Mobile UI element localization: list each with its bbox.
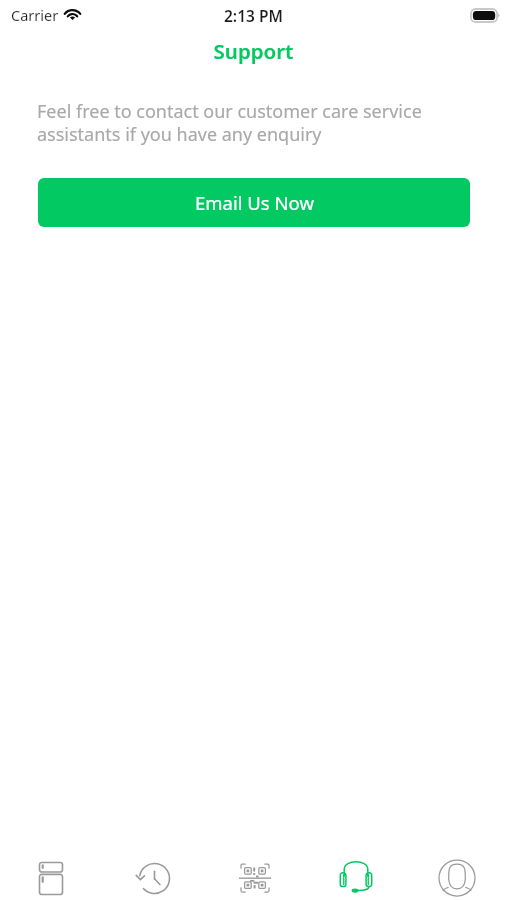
button[interactable]: Support: [305, 855, 406, 900]
button[interactable]: History: [102, 855, 204, 900]
staticText: Feel free to contact our customer care s…: [37, 99, 447, 147]
button[interactable]: Profile: [406, 855, 507, 900]
staticText: Support: [0, 37, 507, 65]
button[interactable]: Fridge: [0, 855, 102, 900]
button[interactable]: Email Us Now: [38, 178, 470, 227]
staticText: Email Us Now: [195, 190, 314, 215]
staticText: Carrier: [11, 5, 59, 25]
staticText: 2:13 PM: [224, 5, 283, 26]
button[interactable]: Scan: [204, 855, 305, 900]
